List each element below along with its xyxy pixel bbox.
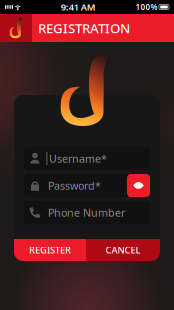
- button[interactable]: REGISTER: [14, 239, 86, 261]
- staticText: Phone Number: [48, 205, 125, 220]
- button[interactable]: Show password: [127, 174, 150, 197]
- staticText: REGISTRATION: [38, 19, 130, 37]
- staticText: REGISTER: [29, 244, 71, 256]
- button[interactable]: CANCEL: [86, 239, 160, 261]
- button[interactable]: Home: [0, 14, 32, 42]
- staticText: CANCEL: [105, 244, 140, 256]
- staticText: Username*: [49, 151, 107, 166]
- staticText: 9:41 AM: [61, 1, 96, 13]
- staticText: Password*: [48, 178, 101, 193]
- staticText: 100%: [135, 2, 157, 12]
